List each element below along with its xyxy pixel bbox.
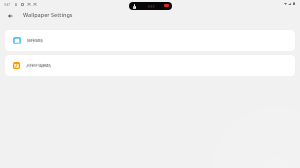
button[interactable]: Back	[4, 11, 16, 22]
button[interactable]: Change phone wallpaper	[5, 30, 295, 51]
staticText: 换手机壁纸	[27, 38, 43, 43]
staticText: 从手机中选择壁纸	[26, 63, 51, 68]
staticText: REC	[148, 4, 156, 9]
staticText: Wallpaper Settings	[23, 11, 73, 18]
staticText: 9:47	[4, 2, 10, 7]
button[interactable]: Pick wallpaper from phone	[5, 55, 295, 76]
